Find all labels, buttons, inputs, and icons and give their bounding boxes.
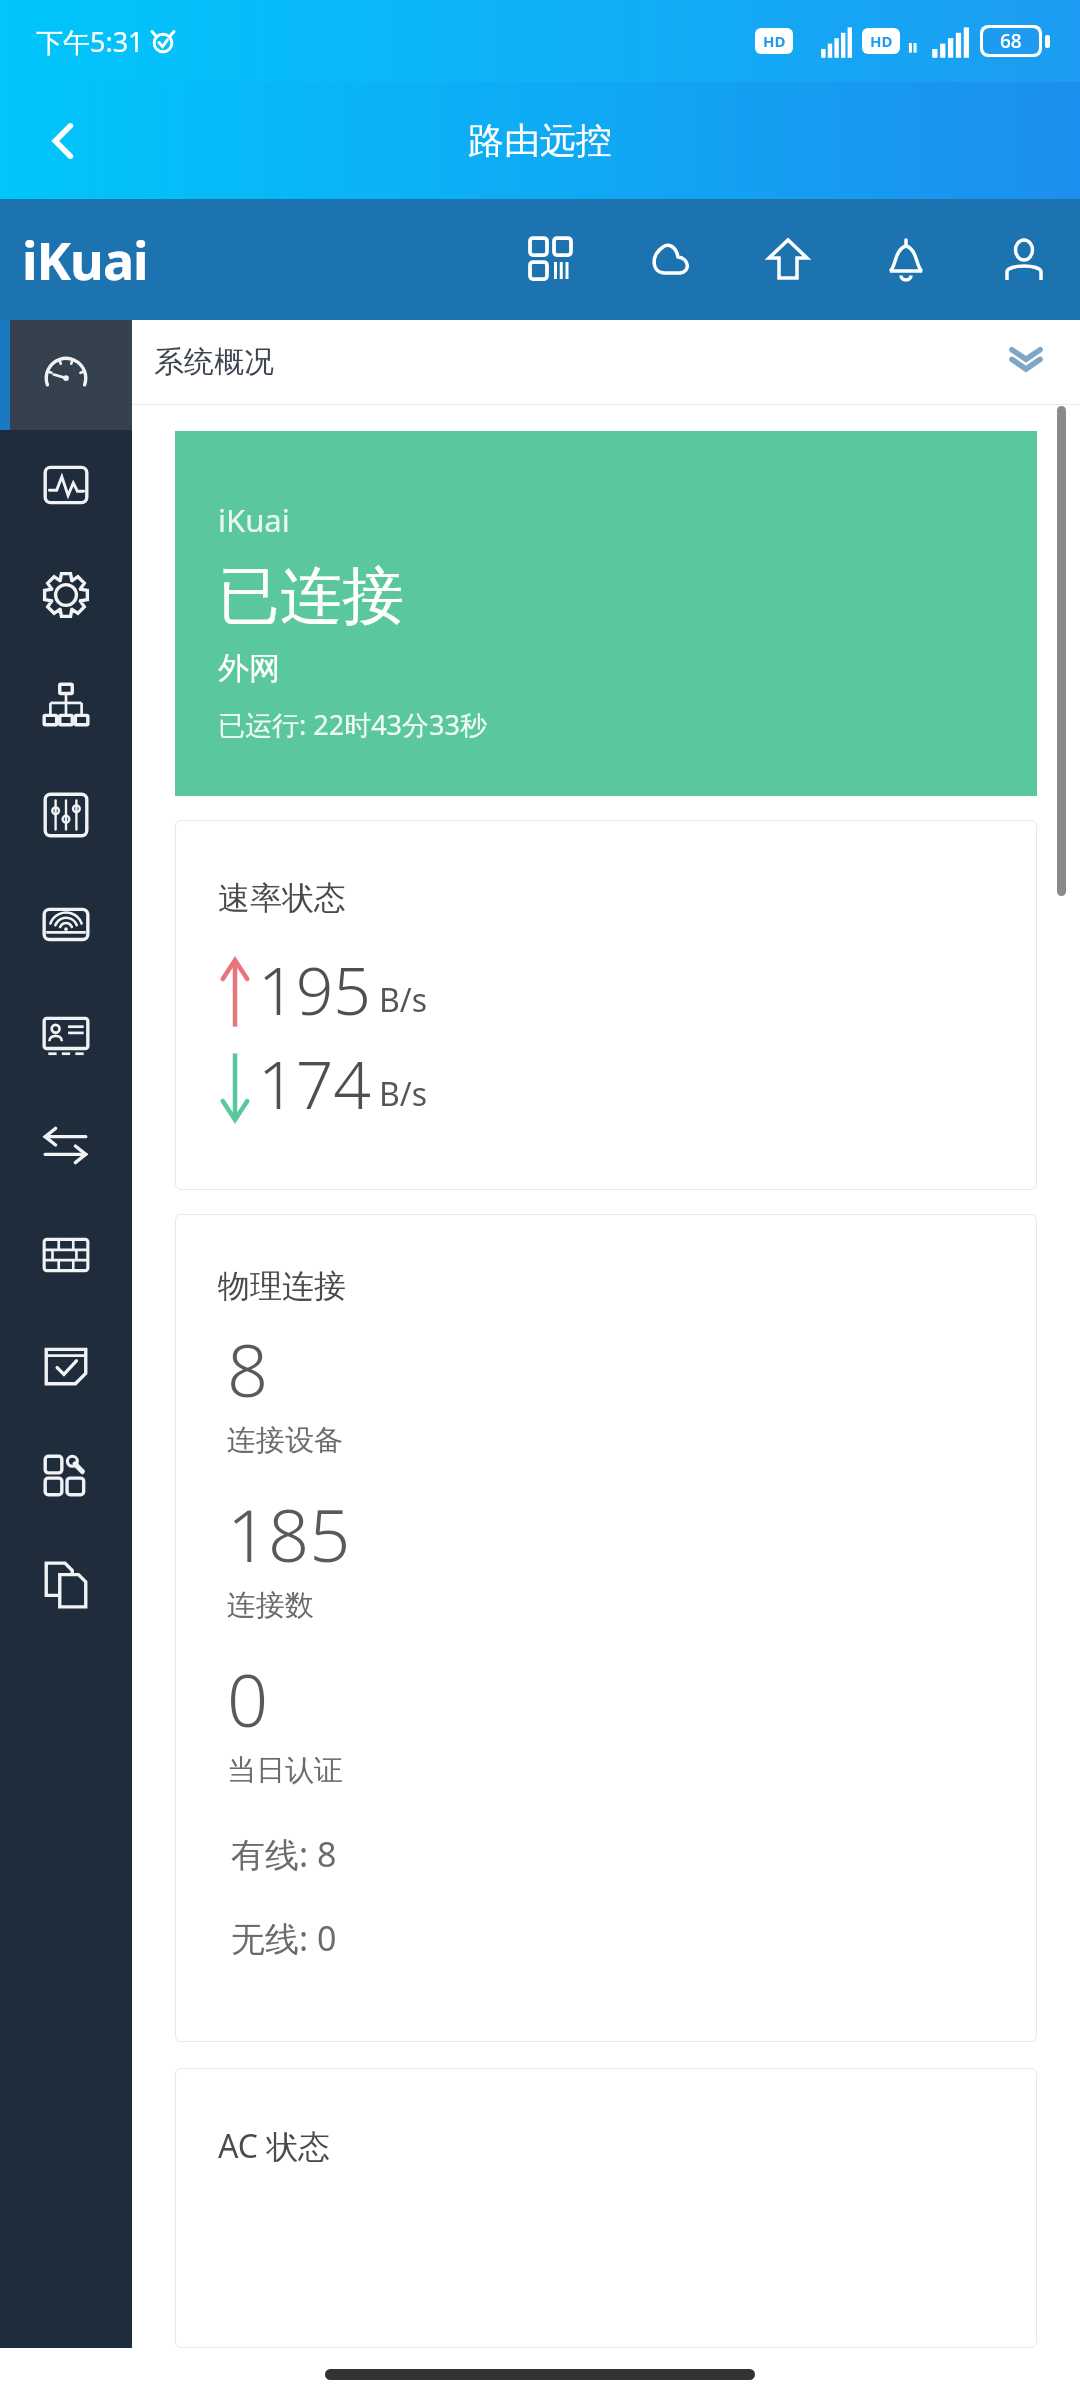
button[interactable]: Apps — [516, 224, 588, 296]
button[interactable]: 系统概况 — [132, 320, 1080, 404]
button[interactable]: 物理连接 — [175, 1214, 1037, 2042]
button[interactable]: Firewall — [0, 1200, 132, 1310]
staticText: 路由远控 — [468, 118, 612, 163]
button[interactable]: AC 状态 — [175, 2068, 1037, 2348]
staticText: B/s — [379, 1072, 428, 1116]
staticText: 连接设备 — [227, 1422, 343, 1459]
button[interactable]: Back — [24, 101, 104, 181]
staticText: AC 状态 — [218, 2124, 331, 2168]
button[interactable]: Network — [0, 650, 132, 760]
staticText: 下午5:31 — [36, 23, 144, 60]
staticText: 0 — [227, 1650, 269, 1748]
staticText: 外网 — [218, 649, 280, 688]
staticText: iKuai — [218, 499, 290, 541]
staticText: 174 — [258, 1038, 372, 1128]
button[interactable]: Cloud — [634, 224, 706, 296]
button[interactable]: Account — [988, 224, 1060, 296]
staticText: 68 — [1000, 28, 1022, 54]
button[interactable]: Routing — [0, 1090, 132, 1200]
staticText: 连接数 — [227, 1587, 314, 1624]
staticText: B/s — [379, 978, 428, 1022]
staticText: HD — [870, 31, 893, 51]
staticText: 185 — [227, 1485, 351, 1583]
button[interactable]: Traffic control — [0, 760, 132, 870]
staticText: 当日认证 — [227, 1752, 343, 1789]
button[interactable]: Monitor — [0, 430, 132, 540]
staticText: 物理连接 — [218, 1266, 346, 1306]
staticText: 有线: 8 — [231, 1831, 337, 1877]
button[interactable]: Accounts — [0, 980, 132, 1090]
staticText: 195 — [258, 944, 372, 1034]
staticText: 已连接 — [218, 557, 404, 635]
button[interactable]: Notifications — [870, 224, 942, 296]
staticText: 已运行: 22时43分33秒 — [218, 706, 487, 743]
button[interactable]: Behavior — [0, 1310, 132, 1420]
button[interactable]: Settings — [0, 540, 132, 650]
staticText: 速率状态 — [218, 878, 346, 918]
staticText: HD — [763, 31, 786, 51]
button[interactable]: Upgrade — [752, 224, 824, 296]
staticText: 8 — [227, 1320, 269, 1418]
button[interactable]: Wireless — [0, 870, 132, 980]
button[interactable]: iKuai — [175, 431, 1037, 796]
staticText: 系统概况 — [154, 343, 274, 381]
button[interactable]: Plugins — [0, 1420, 132, 1530]
button[interactable]: Logs — [0, 1530, 132, 1640]
button[interactable]: Dashboard — [0, 320, 132, 430]
staticText: 无线: 0 — [231, 1915, 337, 1961]
button[interactable]: 速率状态 — [175, 820, 1037, 1190]
staticText: iKuai — [22, 224, 148, 295]
